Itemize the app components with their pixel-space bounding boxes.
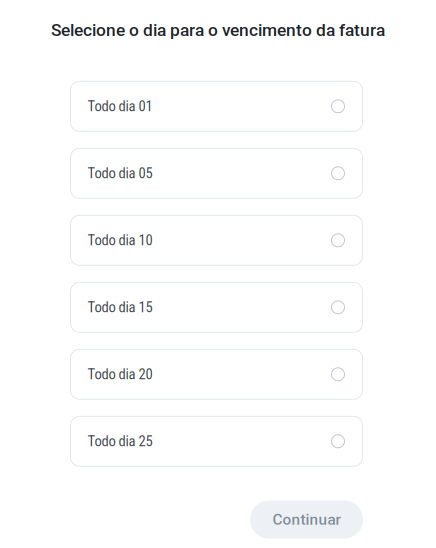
button[interactable]: Continuar (250, 500, 363, 538)
staticText: Todo dia 01 (87, 98, 152, 115)
button[interactable]: Todo dia 10 (70, 215, 362, 265)
button[interactable]: Todo dia 05 (70, 148, 362, 198)
staticText: Todo dia 20 (87, 366, 152, 383)
staticText: Todo dia 25 (87, 433, 152, 450)
staticText: Selecione o dia para o vencimento da fat… (51, 20, 385, 40)
staticText: Todo dia 10 (87, 232, 152, 249)
staticText: Continuar (272, 510, 340, 528)
button[interactable]: Todo dia 20 (70, 349, 362, 399)
button[interactable]: Todo dia 25 (70, 416, 362, 466)
button[interactable]: Todo dia 01 (70, 81, 362, 131)
button[interactable]: Todo dia 15 (70, 282, 362, 332)
staticText: Todo dia 15 (87, 299, 152, 316)
staticText: Todo dia 05 (87, 165, 152, 182)
